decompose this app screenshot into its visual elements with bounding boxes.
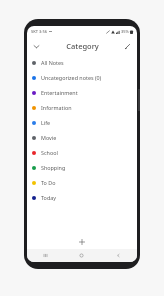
button[interactable]: Recents: [27, 249, 63, 262]
button[interactable]: All Notes: [27, 55, 137, 70]
button[interactable]: Edit: [121, 40, 134, 53]
button[interactable]: Entertainment: [27, 85, 137, 100]
button[interactable]: Today: [27, 190, 137, 205]
staticText: School: [41, 149, 58, 156]
staticText: All Notes: [41, 59, 64, 66]
button[interactable]: To Do: [27, 175, 137, 190]
staticText: 35%: [121, 29, 129, 34]
staticText: Movie: [41, 134, 57, 141]
staticText: Information: [41, 104, 72, 111]
staticText: Today: [41, 194, 56, 201]
button[interactable]: Life: [27, 115, 137, 130]
button[interactable]: Home: [63, 249, 100, 262]
button[interactable]: School: [27, 145, 137, 160]
staticText: Shopping: [41, 164, 66, 171]
button[interactable]: Back: [100, 249, 137, 262]
button[interactable]: Movie: [27, 130, 137, 145]
staticText: To Do: [41, 179, 56, 186]
staticText: SKT 3:56: [31, 29, 47, 34]
button[interactable]: Collapse: [30, 40, 43, 53]
staticText: Uncategorized notes (0): [41, 74, 102, 81]
staticText: Entertainment: [41, 89, 78, 96]
button[interactable]: Information: [27, 100, 137, 115]
staticText: Life: [41, 119, 51, 126]
button[interactable]: Shopping: [27, 160, 137, 175]
staticText: Category: [66, 41, 99, 51]
button[interactable]: Uncategorized notes (0): [27, 70, 137, 85]
button[interactable]: Add category: [76, 236, 88, 248]
